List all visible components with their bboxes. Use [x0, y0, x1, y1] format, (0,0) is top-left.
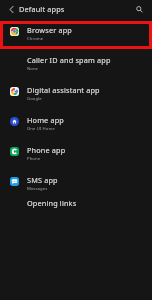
- staticText: None: [27, 66, 39, 72]
- button[interactable]: Search: [131, 1, 147, 17]
- button[interactable]: SMS app: [0, 167, 152, 197]
- button[interactable]: Phone app: [0, 137, 152, 167]
- button[interactable]: Caller ID and spam app: [0, 47, 152, 77]
- button[interactable]: Browser app: [0, 17, 152, 47]
- staticText: Browser app: [27, 25, 72, 35]
- staticText: Phone: [27, 156, 41, 162]
- staticText: Google: [27, 96, 42, 102]
- staticText: Opening links: [27, 198, 77, 208]
- staticText: One UI Home: [27, 126, 55, 132]
- staticText: SMS app: [27, 175, 58, 185]
- staticText: Caller ID and spam app: [27, 55, 111, 65]
- staticText: Chrome: [27, 36, 44, 42]
- staticText: Home app: [27, 115, 65, 125]
- staticText: Default apps: [19, 4, 65, 14]
- staticText: Phone app: [27, 145, 66, 155]
- staticText: Digital assistant app: [27, 85, 100, 95]
- button[interactable]: Navigate up: [3, 1, 19, 17]
- staticText: Messages: [27, 186, 48, 192]
- button[interactable]: Digital assistant app: [0, 77, 152, 107]
- button[interactable]: Opening links: [0, 197, 152, 221]
- button[interactable]: Home app: [0, 107, 152, 137]
